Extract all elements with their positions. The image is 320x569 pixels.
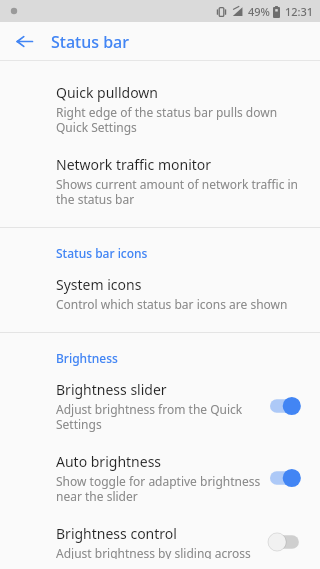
staticText: Status bar icons bbox=[56, 245, 148, 261]
button[interactable]: Brightness slider bbox=[0, 370, 320, 442]
button[interactable]: Brightness control bbox=[0, 514, 320, 569]
staticText: Right edge of the status bar pulls down … bbox=[56, 104, 300, 135]
staticText: 12:31 bbox=[285, 4, 314, 19]
button[interactable]: Auto brightness bbox=[0, 442, 320, 514]
staticText: Auto brightness bbox=[56, 452, 162, 471]
staticText: Control which status bar icons are shown bbox=[56, 296, 288, 312]
button[interactable]: Back bbox=[4, 22, 44, 61]
staticText: Brightness slider bbox=[56, 380, 167, 399]
staticText: Brightness bbox=[56, 350, 118, 366]
button[interactable]: Toggle off bbox=[270, 529, 308, 555]
staticText: 49% bbox=[248, 4, 270, 19]
staticText: Adjust brightness by sliding across the … bbox=[56, 545, 262, 559]
button[interactable]: Quick pulldown bbox=[0, 73, 320, 145]
staticText: System icons bbox=[56, 275, 142, 294]
staticText: Brightness control bbox=[56, 524, 177, 543]
button[interactable]: System icons bbox=[0, 265, 320, 322]
staticText: Network traffic monitor bbox=[56, 155, 212, 174]
staticText: Quick pulldown bbox=[56, 83, 158, 102]
button[interactable]: Toggle on bbox=[270, 393, 308, 419]
staticText: Adjust brightness from the Quick Setting… bbox=[56, 401, 262, 432]
staticText: Status bar bbox=[51, 31, 130, 53]
staticText: Shows current amount of network traffic … bbox=[56, 176, 300, 207]
button[interactable]: Toggle on bbox=[270, 465, 308, 491]
staticText: Show toggle for adaptive brightness near… bbox=[56, 473, 262, 504]
button[interactable]: Network traffic monitor bbox=[0, 145, 320, 217]
